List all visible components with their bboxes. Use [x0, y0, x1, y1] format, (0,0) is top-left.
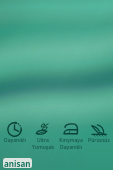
button[interactable]: Durable — [0, 121, 29, 144]
button[interactable]: Smooth — [85, 121, 113, 144]
staticText: Kırışmaya Dayanıklı — [59, 137, 83, 150]
other: Durable — [7, 121, 23, 137]
other: Wrinkle resistant — [63, 121, 79, 137]
button[interactable]: anisan logo — [3, 158, 32, 168]
staticText: anisan — [4, 158, 31, 168]
other: Smooth — [91, 121, 107, 137]
button[interactable]: Ultra soft — [29, 121, 57, 150]
other: Ultra soft — [35, 121, 51, 137]
staticText: Pürüzsüz — [88, 137, 110, 144]
button[interactable]: Wrinkle resistant — [57, 121, 85, 150]
staticText: Ultra Yumuşak — [32, 137, 54, 150]
staticText: Dayanıklı — [4, 137, 26, 144]
